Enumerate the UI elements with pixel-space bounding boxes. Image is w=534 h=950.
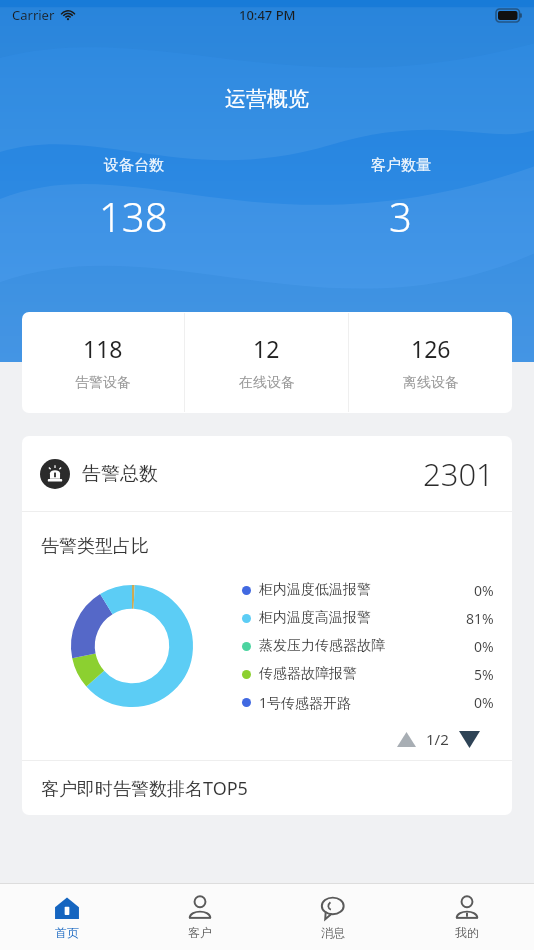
button[interactable]: 118 (22, 312, 184, 413)
button[interactable]: Previous page (391, 724, 421, 754)
staticText: 运营概览 (0, 86, 534, 112)
button[interactable]: Next page (454, 724, 484, 754)
button[interactable]: 1号传感器开路 (242, 688, 494, 716)
staticText: 设备台数 (104, 156, 164, 175)
staticText: 118 (83, 333, 123, 364)
staticText: 1号传感器开路 (259, 693, 352, 712)
button[interactable]: 12 (185, 312, 348, 413)
button[interactable]: 柜内温度低温报警 (242, 576, 494, 604)
staticText: 在线设备 (239, 374, 295, 392)
other: Alarm (40, 459, 70, 489)
staticText: 2301 (423, 453, 494, 495)
button[interactable]: 柜内温度高温报警 (242, 604, 494, 632)
staticText: 126 (411, 333, 451, 364)
staticText: 3 (389, 189, 412, 243)
button[interactable]: 传感器故障报警 (242, 660, 494, 688)
button[interactable]: 首页 (0, 884, 133, 950)
staticText: 告警总数 (82, 462, 158, 486)
staticText: 柜内温度高温报警 (259, 609, 371, 627)
staticText: 1/2 (426, 729, 449, 749)
staticText: 0% (474, 637, 494, 656)
staticText: 蒸发压力传感器故障 (259, 637, 385, 655)
button[interactable]: Alarm (22, 436, 512, 511)
button[interactable]: 消息 (266, 884, 400, 950)
button[interactable]: 客户即时告警数排名TOP5 (22, 761, 512, 815)
staticText: 12 (253, 333, 280, 364)
staticText: 告警类型占比 (41, 535, 149, 558)
staticText: 离线设备 (403, 374, 459, 392)
staticText: 138 (99, 189, 168, 243)
staticText: 0% (474, 581, 494, 600)
button[interactable]: 蒸发压力传感器故障 (242, 632, 494, 660)
staticText: 首页 (55, 925, 79, 940)
staticText: 柜内温度低温报警 (259, 581, 371, 599)
staticText: 消息 (321, 925, 345, 940)
button[interactable]: 客户 (133, 884, 266, 950)
staticText: 10:47 PM (239, 6, 296, 24)
staticText: 客户数量 (371, 156, 431, 175)
button[interactable]: 我的 (400, 884, 534, 950)
staticText: 81% (466, 609, 494, 628)
staticText: 告警设备 (75, 374, 131, 392)
staticText: 传感器故障报警 (259, 665, 357, 683)
staticText: 0% (474, 693, 494, 712)
staticText: 客户 (188, 925, 212, 940)
staticText: Carrier (12, 6, 55, 24)
staticText: 客户即时告警数排名TOP5 (41, 776, 248, 801)
staticText: 我的 (455, 925, 479, 940)
button[interactable]: 126 (349, 312, 512, 413)
staticText: 5% (474, 665, 494, 684)
